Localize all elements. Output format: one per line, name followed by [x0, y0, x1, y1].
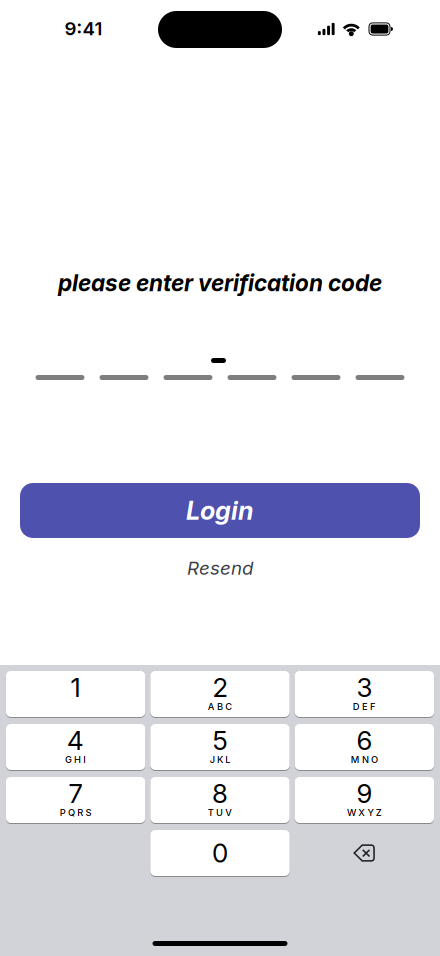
staticText: K [217, 754, 223, 765]
staticText: V [225, 807, 232, 818]
staticText: B [217, 701, 223, 712]
staticText: 4 [67, 725, 84, 756]
staticText: T [208, 807, 214, 818]
staticText: 3 [356, 672, 372, 703]
staticText: N [362, 754, 369, 765]
staticText: A [208, 701, 215, 712]
staticText: Login [186, 495, 254, 526]
staticText: D [353, 701, 360, 712]
staticText: 1 [71, 672, 81, 703]
button[interactable]: 8 [150, 776, 290, 823]
staticText: X [358, 807, 365, 818]
staticText: Z [376, 807, 382, 818]
button[interactable]: Resend [0, 557, 440, 579]
staticText: U [216, 807, 223, 818]
staticText: 9:41 [64, 17, 102, 40]
staticText: F [370, 701, 376, 712]
staticText: G [65, 754, 72, 765]
staticText: C [225, 701, 232, 712]
button[interactable]: 4 [6, 723, 145, 770]
staticText: L [225, 754, 230, 765]
button[interactable]: 9 [295, 776, 434, 823]
staticText: O [371, 754, 378, 765]
button[interactable]: 7 [6, 776, 145, 823]
button[interactable]: 1 [6, 670, 145, 717]
staticText: please enter verification code [58, 269, 382, 297]
staticText: W [347, 807, 356, 818]
staticText: I [83, 754, 86, 765]
button[interactable]: Delete [295, 830, 434, 876]
staticText: S [85, 807, 91, 818]
button[interactable]: 2 [150, 670, 290, 717]
button[interactable]: 5 [150, 723, 290, 770]
staticText: P [60, 807, 66, 818]
staticText: Y [367, 807, 373, 818]
staticText: Resend [187, 557, 253, 579]
button[interactable]: 6 [295, 723, 434, 770]
staticText: Q [68, 807, 75, 818]
staticText: 6 [356, 725, 372, 756]
button[interactable]: 3 [295, 670, 434, 717]
staticText: M [351, 754, 360, 765]
staticText: R [77, 807, 83, 818]
staticText: 2 [212, 672, 227, 703]
staticText: 0 [212, 837, 228, 869]
staticText: 5 [212, 725, 227, 756]
staticText: E [362, 701, 368, 712]
staticText: H [74, 754, 81, 765]
staticText: 8 [212, 778, 228, 809]
staticText: J [210, 754, 215, 765]
button[interactable]: 0 [150, 829, 290, 876]
staticText: 7 [69, 778, 83, 809]
button[interactable]: Login [20, 483, 420, 538]
staticText: 9 [356, 778, 372, 809]
